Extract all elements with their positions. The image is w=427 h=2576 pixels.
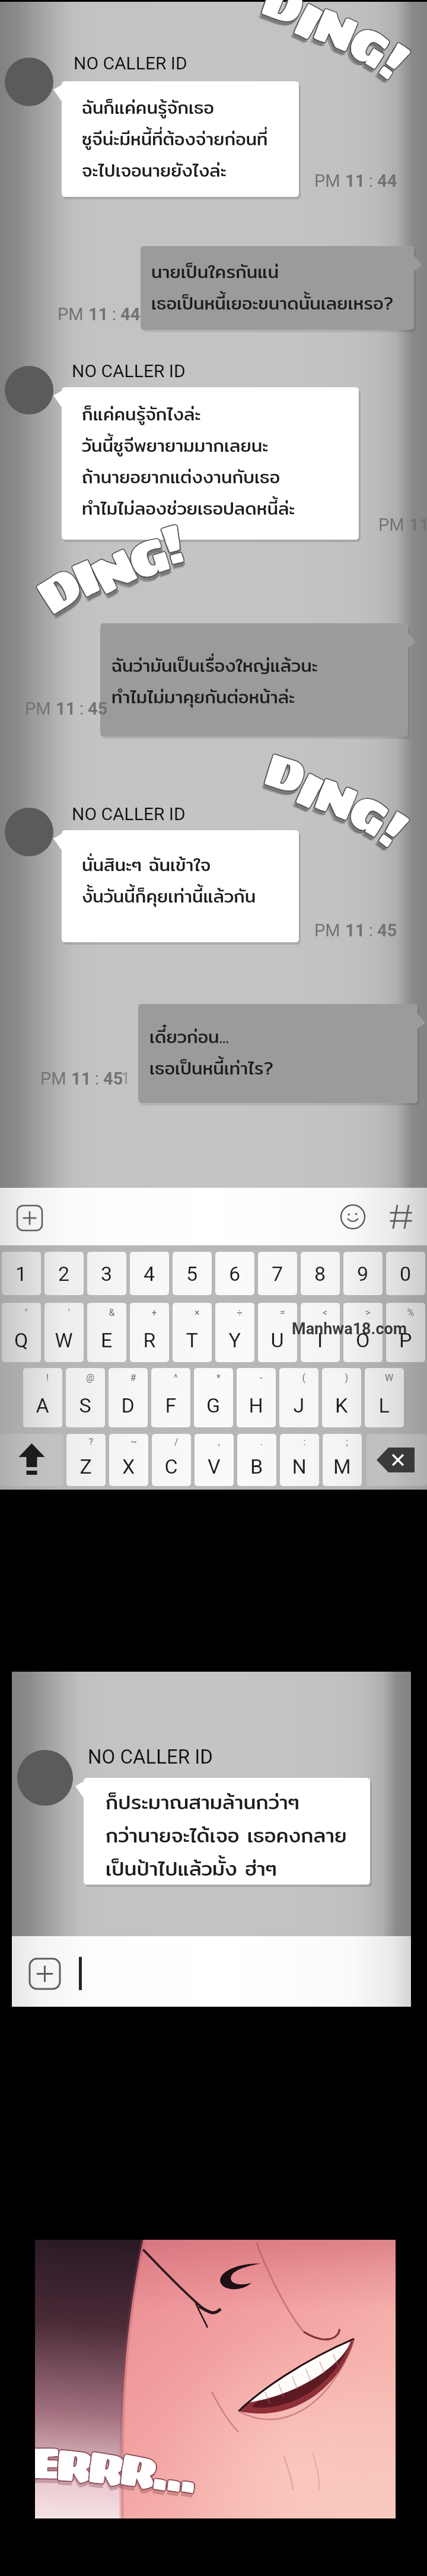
button[interactable]: Webtoon chapter page (0, 0, 427, 2576)
